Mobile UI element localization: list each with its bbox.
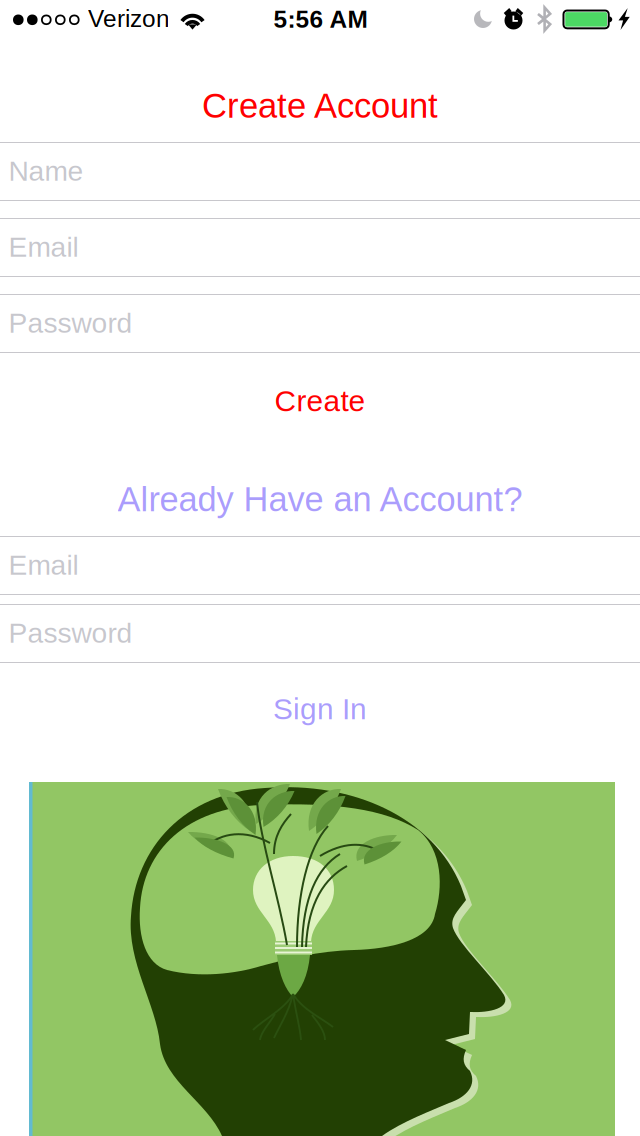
staticText: Create Account [202,86,438,125]
button[interactable]: Create Account [0,0,640,1136]
staticText: Already Have an Account? [117,480,522,518]
staticText: Email [8,231,78,263]
staticText: Verizon [88,5,170,32]
staticText: Name [8,155,83,187]
button[interactable]: Already Have an Account? [0,0,640,1136]
staticText: 5:56 AM [273,6,367,33]
staticText: Sign In [273,692,367,725]
staticText: Password [8,307,132,339]
staticText: Create [274,384,365,417]
button[interactable]: Create [0,0,640,1136]
staticText: Password [8,617,132,649]
staticText: Email [8,549,78,581]
button[interactable]: Sign In [0,0,640,1136]
